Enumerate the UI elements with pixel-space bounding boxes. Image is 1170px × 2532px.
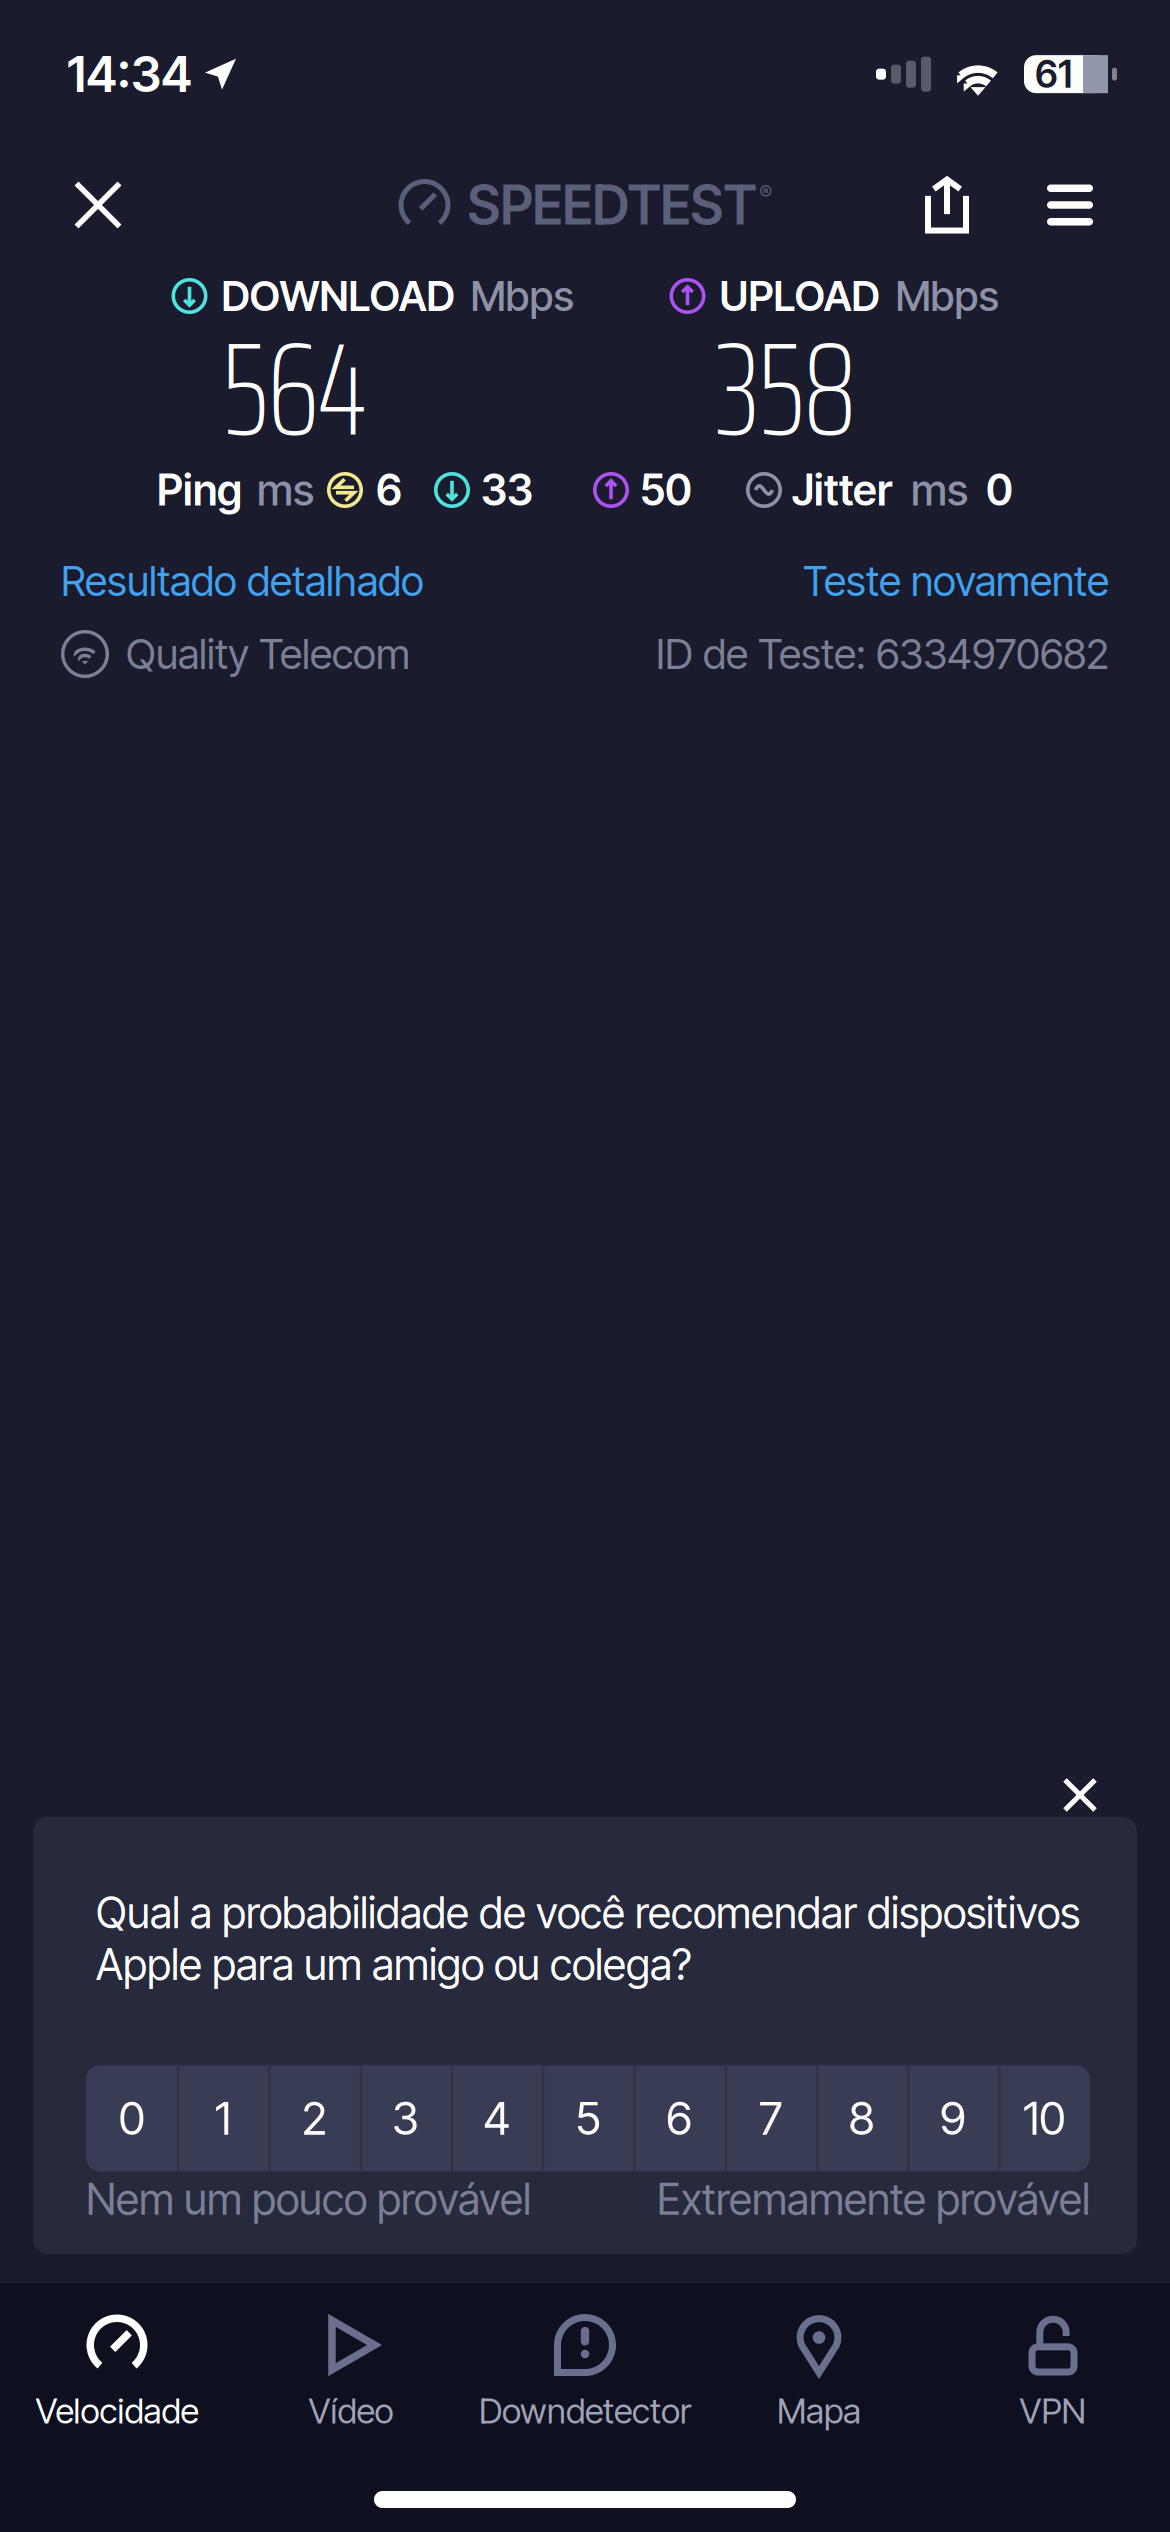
staticText: Velocidade xyxy=(35,2390,198,2432)
staticText: Downdetector xyxy=(479,2390,691,2432)
button[interactable]: Menu xyxy=(1015,140,1125,270)
staticText: Vídeo xyxy=(308,2390,393,2432)
button[interactable]: 7 xyxy=(725,2065,816,2171)
staticText: Extremamente provável xyxy=(657,2173,1090,2225)
staticText: 3 xyxy=(392,2091,419,2146)
staticText: 50 xyxy=(640,464,692,516)
staticText: SPEEDTEST xyxy=(467,173,756,237)
button[interactable]: 9 xyxy=(907,2065,999,2171)
button[interactable]: 2 xyxy=(268,2065,360,2171)
button[interactable]: Vídeo xyxy=(234,2313,468,2433)
staticText: Mbps xyxy=(895,271,998,321)
staticText: Mbps xyxy=(470,271,573,321)
staticText: 6 xyxy=(666,2091,692,2146)
staticText: Ping xyxy=(157,464,242,516)
button[interactable]: Downdetector xyxy=(468,2313,702,2433)
staticText: Quality Telecom xyxy=(126,629,410,679)
staticText: 6 xyxy=(376,464,402,516)
staticText: 0 xyxy=(986,464,1013,516)
staticText: 564 xyxy=(222,286,368,492)
button[interactable]: 1 xyxy=(177,2065,269,2171)
staticText: ms xyxy=(257,464,314,516)
button[interactable]: Teste novamente xyxy=(803,556,1109,606)
staticText: ® xyxy=(759,181,771,205)
staticText: UPLOAD xyxy=(719,271,879,321)
staticText: 2 xyxy=(302,2091,327,2146)
staticText: 33 xyxy=(481,464,533,516)
button[interactable]: 6 xyxy=(634,2065,725,2171)
staticText: Mapa xyxy=(777,2390,861,2432)
staticText: Jitter xyxy=(792,464,892,516)
staticText: 8 xyxy=(849,2091,875,2146)
staticText: 1 xyxy=(215,2091,231,2146)
staticText: 61 xyxy=(1035,52,1072,97)
staticText: 7 xyxy=(759,2091,782,2146)
staticText: VPN xyxy=(1019,2390,1086,2432)
staticText: 10 xyxy=(1023,2091,1065,2146)
button[interactable]: 5 xyxy=(542,2065,634,2171)
button[interactable]: Compartilhar xyxy=(879,140,1015,270)
staticText: 5 xyxy=(575,2091,600,2146)
staticText: 14:34 xyxy=(67,44,192,104)
button[interactable]: 4 xyxy=(451,2065,542,2171)
staticText: ID de Teste: 6334970682 xyxy=(656,629,1109,679)
button[interactable]: Mapa xyxy=(702,2313,936,2433)
staticText: 4 xyxy=(483,2091,510,2146)
button[interactable]: 0 xyxy=(86,2065,177,2171)
staticText: 9 xyxy=(940,2091,966,2146)
button[interactable]: 8 xyxy=(816,2065,907,2171)
button[interactable]: VPN xyxy=(936,2313,1170,2433)
button[interactable]: 3 xyxy=(360,2065,451,2171)
staticText: DOWNLOAD xyxy=(221,271,454,321)
button[interactable]: Velocidade xyxy=(0,2313,234,2433)
button[interactable]: Fechar xyxy=(38,140,158,270)
button[interactable]: Fechar pesquisa xyxy=(1044,1773,1116,1817)
button[interactable]: 10 xyxy=(999,2065,1090,2171)
staticText: Nem um pouco provável xyxy=(86,2173,531,2225)
staticText: 0 xyxy=(119,2091,145,2146)
staticText: 358 xyxy=(715,286,857,492)
staticText: Teste novamente xyxy=(803,556,1109,606)
staticText: ms xyxy=(911,464,968,516)
staticText: Qual a probabilidade de você recomendar … xyxy=(96,1887,1080,1990)
staticText: Resultado detalhado xyxy=(61,556,424,606)
button[interactable]: Resultado detalhado xyxy=(61,556,424,606)
